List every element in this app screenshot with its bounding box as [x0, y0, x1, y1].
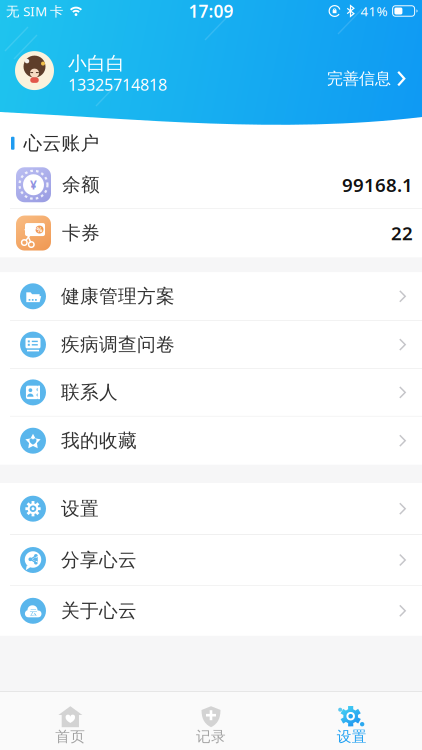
button[interactable]: 完善信息	[327, 61, 406, 80]
staticText: 记录	[196, 728, 226, 746]
button[interactable]: 我的收藏	[0, 417, 422, 465]
button[interactable]: 记录	[141, 692, 281, 746]
button[interactable]: 设置	[0, 483, 422, 534]
staticText: 无 SIM 卡	[6, 2, 63, 20]
staticText: 17:09	[188, 0, 233, 22]
staticText: 22	[391, 221, 413, 245]
button[interactable]: 首页	[0, 692, 141, 746]
staticText: 健康管理方案	[61, 285, 175, 308]
button[interactable]: 分享心云	[0, 535, 422, 585]
staticText: 13325714818	[68, 74, 167, 95]
button[interactable]: %	[0, 209, 422, 257]
button[interactable]: 疾病调查问卷	[0, 321, 422, 368]
staticText: 联系人	[61, 381, 118, 404]
staticText: 首页	[55, 728, 85, 746]
staticText: 关于心云	[61, 599, 137, 622]
staticText: 卡券	[62, 222, 100, 244]
button[interactable]: ¥	[0, 161, 422, 208]
staticText: 疾病调查问卷	[61, 333, 175, 356]
staticText: 余额	[62, 173, 100, 196]
staticText: 41%	[361, 2, 388, 20]
staticText: 设置	[61, 497, 99, 520]
button[interactable]: 设置	[281, 692, 422, 746]
staticText: 小白白	[68, 52, 125, 75]
staticText: %	[36, 225, 42, 234]
button[interactable]: 联系人	[0, 369, 422, 416]
staticText: 设置	[337, 728, 367, 746]
button[interactable]: 云	[0, 586, 422, 636]
staticText: 完善信息	[327, 69, 391, 88]
staticText: 分享心云	[61, 548, 137, 571]
staticText: 心云账户	[23, 132, 99, 155]
button[interactable]: 健康管理方案	[0, 272, 422, 320]
staticText: 99168.1	[342, 172, 413, 197]
staticText: 我的收藏	[61, 429, 137, 452]
staticText: 云	[29, 607, 37, 617]
staticText: ¥	[30, 177, 37, 193]
button[interactable]: 个人头像	[15, 51, 54, 90]
